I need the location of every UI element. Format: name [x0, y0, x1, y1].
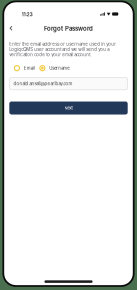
- staticText: Forgot Password: [44, 25, 93, 32]
- staticText: Enter the email address or username used…: [9, 42, 116, 57]
- staticText: Username: [49, 66, 69, 71]
- staticText: Email: [24, 66, 35, 71]
- button[interactable]: Email: [14, 65, 35, 71]
- staticText: 11:23: [22, 12, 33, 17]
- button[interactable]: Next: [9, 101, 128, 114]
- button[interactable]: Back: [6, 22, 17, 34]
- staticText: Next: [64, 106, 72, 110]
- staticText: donald.ansell@pearlbay.com: [13, 81, 72, 86]
- button[interactable]: Username: [40, 65, 69, 71]
